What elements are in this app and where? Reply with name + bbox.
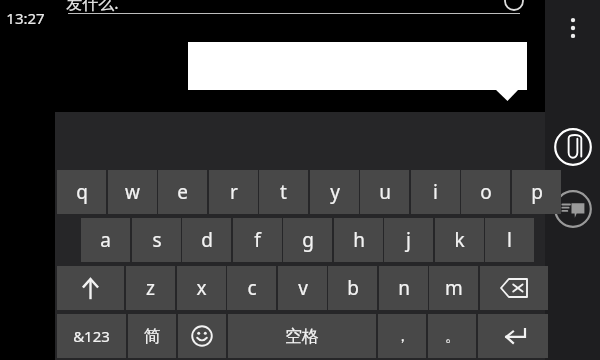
button[interactable]: a: [81, 218, 130, 262]
button[interactable]: Backspace: [480, 266, 548, 310]
button[interactable]: w: [108, 170, 157, 214]
staticText: &123: [73, 326, 110, 346]
staticText: q: [76, 179, 88, 205]
staticText: 。: [445, 327, 460, 346]
button[interactable]: Enter: [478, 314, 548, 358]
button[interactable]: s: [132, 218, 181, 262]
staticText: y: [330, 179, 340, 205]
button[interactable]: v: [278, 266, 327, 310]
staticText: z: [146, 275, 155, 301]
button[interactable]: &123: [57, 314, 126, 358]
button[interactable]: k: [435, 218, 484, 262]
button[interactable]: t: [259, 170, 308, 214]
staticText: a: [100, 227, 111, 253]
staticText: g: [302, 227, 314, 253]
button[interactable]: Emoji: [178, 314, 226, 358]
button[interactable]: h: [334, 218, 383, 262]
staticText: f: [254, 227, 261, 253]
staticText: p: [531, 179, 543, 205]
button[interactable]: Attach: [554, 128, 592, 166]
staticText: ，: [395, 327, 410, 346]
button[interactable]: i: [411, 170, 460, 214]
staticText: b: [347, 275, 359, 301]
staticText: s: [152, 227, 162, 253]
staticText: u: [379, 179, 391, 205]
staticText: l: [507, 227, 512, 253]
staticText: i: [433, 179, 438, 205]
staticText: n: [398, 275, 410, 301]
button[interactable]: e: [158, 170, 207, 214]
button[interactable]: More options: [545, 0, 600, 55]
staticText: w: [125, 179, 140, 205]
button[interactable]: 简: [128, 314, 176, 358]
staticText: 13:27: [6, 8, 45, 28]
button[interactable]: 。: [428, 314, 476, 358]
button[interactable]: Shift: [57, 266, 124, 310]
button[interactable]: l: [485, 218, 534, 262]
staticText: v: [298, 275, 308, 301]
button[interactable]: d: [182, 218, 231, 262]
button[interactable]: u: [360, 170, 409, 214]
staticText: k: [454, 227, 465, 253]
staticText: o: [480, 179, 492, 205]
button[interactable]: 空格: [228, 314, 376, 358]
button[interactable]: b: [328, 266, 377, 310]
staticText: d: [201, 227, 213, 253]
button[interactable]: q: [57, 170, 106, 214]
button[interactable]: c: [227, 266, 276, 310]
button[interactable]: r: [209, 170, 258, 214]
button[interactable]: z: [126, 266, 175, 310]
button[interactable]: o: [461, 170, 510, 214]
staticText: j: [406, 227, 411, 253]
button[interactable]: g: [283, 218, 332, 262]
button[interactable]: f: [233, 218, 282, 262]
staticText: e: [177, 179, 188, 205]
staticText: 空格: [285, 326, 319, 347]
staticText: t: [280, 179, 287, 205]
button[interactable]: p: [512, 170, 561, 214]
staticText: m: [445, 275, 463, 301]
button[interactable]: n: [379, 266, 428, 310]
staticText: h: [353, 227, 365, 253]
staticText: r: [230, 179, 238, 205]
staticText: c: [247, 275, 257, 301]
button[interactable]: j: [384, 218, 433, 262]
button[interactable]: x: [177, 266, 226, 310]
button[interactable]: m: [429, 266, 478, 310]
staticText: 发什么.: [66, 0, 119, 14]
button[interactable]: ，: [378, 314, 426, 358]
button[interactable]: Messages: [554, 190, 592, 228]
staticText: x: [196, 275, 207, 301]
button[interactable]: y: [310, 170, 359, 214]
staticText: 简: [144, 326, 161, 347]
